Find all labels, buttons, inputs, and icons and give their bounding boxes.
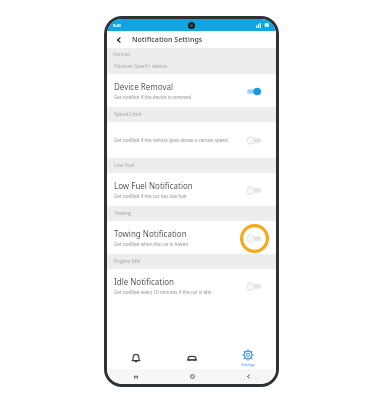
button[interactable]: Toggle off [246,136,262,145]
button[interactable]: Vehicle [164,346,220,369]
staticText: Get notified every 10 minutes if the car… [114,289,212,295]
staticText: Towing Notification [114,228,187,239]
button[interactable]: Back [220,369,276,384]
button[interactable]: Toggle off [246,234,262,243]
staticText: Settings [241,362,255,367]
staticText: Get notified if the car has low fuel [114,193,187,199]
staticText: Device Removal [114,81,174,92]
staticText: Towing [114,210,131,217]
staticText: 9:41 [113,23,121,28]
button[interactable]: Toggle off [246,186,262,195]
button[interactable]: Idle Notification [107,269,276,302]
staticText: Get notified if the vehicle goes above a… [114,137,228,143]
button[interactable]: Home [164,369,220,384]
button[interactable]: Get notified if the vehicle goes above a… [107,122,276,158]
button[interactable]: Towing Notification [107,221,276,254]
staticText: Low Fuel Notification [114,180,193,191]
staticText: Get notified if the device is removed [114,94,192,100]
staticText: Speed Limit [114,111,142,118]
staticText: Engine Idle [114,258,141,265]
staticText: Harman Spark+ device [114,63,167,70]
button[interactable]: Device Removal [107,74,276,107]
staticText: Idle Notification [114,276,175,287]
button[interactable]: Notifications [107,346,164,369]
button[interactable]: Toggle on [246,87,262,96]
button[interactable]: Low Fuel Notification [107,173,276,206]
staticText: Harman [113,51,131,57]
staticText: Get notified when the car is towed [114,241,188,247]
staticText: Notification Settings [132,35,203,45]
button[interactable]: Recents [107,369,164,384]
staticText: Low Fuel [114,162,135,169]
button[interactable]: Settings [220,346,276,369]
button[interactable]: Toggle off [246,282,262,291]
button[interactable]: Back [113,34,125,46]
